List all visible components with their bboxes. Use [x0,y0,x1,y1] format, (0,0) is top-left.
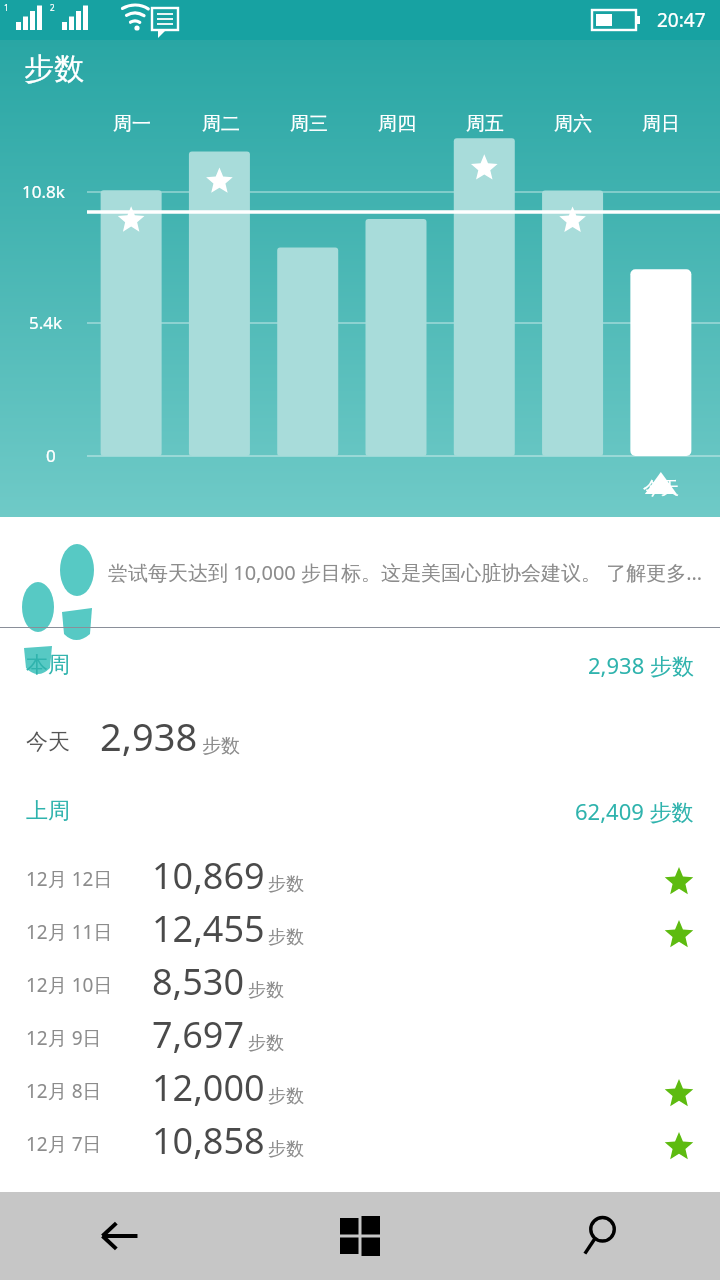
staticText: 12月 7日 [26,1131,102,1157]
staticText: 10,869 [152,851,265,900]
button[interactable]: Search [480,1192,720,1280]
staticText: 12,455 [152,904,265,953]
staticText: 尝试每天达到 10,000 步目标。这是美国心脏协会建议。 了解更多… [108,559,702,586]
staticText: 12月 11日 [26,919,113,945]
staticText: 周三 [290,112,328,136]
staticText: 周六 [554,112,592,136]
staticText: 5.4k [29,311,63,334]
staticText: 步数 [268,1138,304,1161]
button[interactable]: 上周 [0,792,720,830]
staticText: 7,697 [152,1010,245,1059]
staticText: 2,938 步数 [588,650,694,680]
button[interactable]: Back [0,1192,240,1280]
staticText: 步数 [248,1032,284,1055]
button[interactable]: 尝试每天达到 10,000 步目标。这是美国心脏协会建议。 了解更多… [0,517,720,627]
staticText: 步数 [268,1085,304,1108]
staticText: 12月 10日 [26,972,113,998]
button[interactable]: 12月 7日 [0,1112,720,1165]
staticText: 1 [4,2,9,13]
staticText: 上周 [26,797,70,825]
staticText: 步数 [202,734,240,758]
staticText: 2 [50,2,55,13]
staticText: 8,530 [152,957,245,1006]
staticText: 周日 [642,112,680,136]
staticText: 10.8k [22,180,65,203]
staticText: 12月 8日 [26,1078,102,1104]
staticText: 今天 [643,477,679,500]
button[interactable]: Start [240,1192,480,1280]
staticText: 周一 [113,112,151,136]
staticText: 0 [46,444,56,467]
staticText: 今天 [26,728,70,756]
button[interactable]: 本周 [0,646,720,684]
staticText: 周四 [378,112,416,136]
staticText: 周五 [466,112,504,136]
staticText: 62,409 步数 [575,796,694,826]
staticText: 10,858 [152,1116,265,1165]
staticText: 步数 [268,926,304,949]
staticText: 12月 9日 [26,1025,102,1051]
staticText: 12月 12日 [26,866,113,892]
staticText: 12,000 [152,1063,265,1112]
button[interactable]: 12月 10日 [0,953,720,1006]
staticText: 步数 [268,873,304,896]
staticText: 2,938 [100,710,198,762]
button[interactable]: 12月 8日 [0,1059,720,1112]
staticText: 步数 [24,50,84,88]
button[interactable]: 12月 9日 [0,1006,720,1059]
staticText: 20:47 [657,7,706,33]
staticText: 周二 [202,112,240,136]
staticText: 步数 [248,979,284,1002]
staticText: 本周 [26,651,70,679]
button[interactable]: 12月 11日 [0,900,720,953]
button[interactable]: 今天 [0,710,720,762]
button[interactable]: 12月 12日 [0,847,720,900]
